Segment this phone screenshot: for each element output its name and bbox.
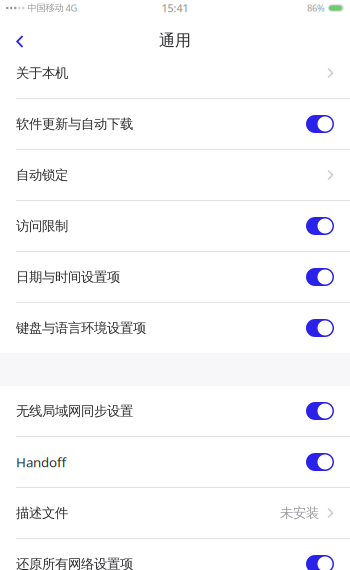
button[interactable]: 无线局域网同步设置 xyxy=(0,386,350,436)
button[interactable]: 日期与时间设置项 xyxy=(0,252,350,302)
staticText: 4G xyxy=(63,2,77,14)
staticText: 未安装 xyxy=(280,505,319,521)
staticText: 关于本机 xyxy=(16,65,68,81)
button[interactable]: 还原所有网络设置项 xyxy=(0,539,350,570)
staticText: 自动锁定 xyxy=(16,167,68,183)
staticText: 还原所有网络设置项 xyxy=(16,556,133,570)
staticText: 无线局域网同步设置 xyxy=(16,403,133,419)
button[interactable]: 描述文件 xyxy=(0,488,350,538)
button[interactable]: 软件更新与自动下载 xyxy=(0,99,350,149)
staticText: 日期与时间设置项 xyxy=(16,269,120,285)
button[interactable]: 键盘与语言环境设置项 xyxy=(0,303,350,353)
staticText: 描述文件 xyxy=(16,505,68,521)
staticText: 键盘与语言环境设置项 xyxy=(16,320,146,336)
staticText: 通用 xyxy=(159,31,191,50)
button[interactable]: Back xyxy=(0,16,40,48)
staticText: Handoff xyxy=(16,453,66,471)
button[interactable]: 关于本机 xyxy=(0,48,350,98)
staticText: 访问限制 xyxy=(16,218,68,234)
staticText: 中国移动 xyxy=(27,2,63,14)
staticText: 软件更新与自动下载 xyxy=(16,116,133,132)
staticText: 86% xyxy=(307,2,325,14)
staticText: 15:41 xyxy=(161,1,188,15)
button[interactable]: 访问限制 xyxy=(0,201,350,251)
button[interactable]: 自动锁定 xyxy=(0,150,350,200)
button[interactable]: Handoff xyxy=(0,437,350,487)
